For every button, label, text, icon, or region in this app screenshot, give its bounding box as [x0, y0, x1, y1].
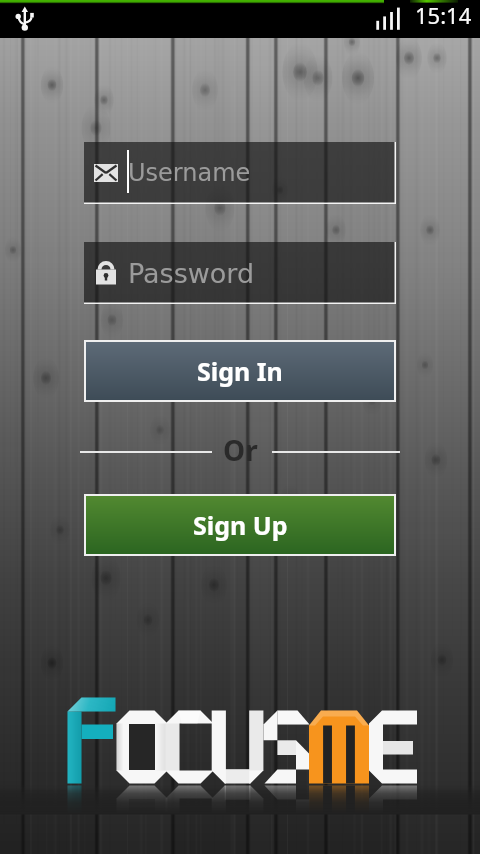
staticText: Username: [128, 159, 251, 187]
button[interactable]: Password: [84, 242, 396, 304]
button[interactable]: Sign In: [84, 340, 396, 402]
staticText: Password: [128, 258, 255, 289]
button[interactable]: Sign Up: [84, 494, 396, 556]
staticText: Sign In: [197, 354, 283, 388]
button[interactable]: Username: [84, 142, 396, 204]
staticText: Or: [223, 431, 258, 469]
staticText: Sign Up: [193, 508, 288, 542]
staticText: 15:14: [415, 0, 472, 30]
